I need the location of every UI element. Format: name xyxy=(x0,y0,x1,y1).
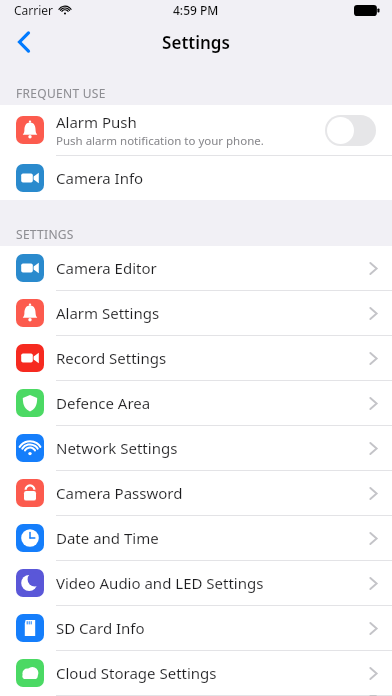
staticText: Video Audio and LED Settings xyxy=(56,573,369,593)
staticText: Defence Area xyxy=(56,393,369,413)
button[interactable]: Camera Password xyxy=(0,471,392,515)
staticText: Carrier xyxy=(14,2,54,18)
button[interactable]: Alarm Push xyxy=(0,105,392,155)
button[interactable]: SD Card Info xyxy=(0,606,392,650)
button[interactable]: Camera Info xyxy=(0,156,392,200)
button[interactable]: Cloud Storage Settings xyxy=(0,651,392,695)
staticText: SETTINGS xyxy=(16,226,74,242)
staticText: Alarm Settings xyxy=(56,303,369,323)
button[interactable]: Defence Area xyxy=(0,381,392,425)
staticText: FREQUENT USE xyxy=(16,85,106,101)
staticText: Network Settings xyxy=(56,438,369,458)
staticText: Camera Editor xyxy=(56,258,369,278)
button[interactable]: Back xyxy=(0,20,48,64)
button[interactable]: Record Settings xyxy=(0,336,392,380)
staticText: Alarm Push xyxy=(56,112,137,132)
staticText: Settings xyxy=(162,31,230,54)
staticText: Date and Time xyxy=(56,528,369,548)
staticText: Push alarm notification to your phone. xyxy=(56,133,264,149)
staticText: Camera Password xyxy=(56,483,369,503)
button[interactable]: Date and Time xyxy=(0,516,392,560)
staticText: 4:59 PM xyxy=(173,2,219,18)
button[interactable]: Camera Editor xyxy=(0,246,392,290)
button[interactable]: Network Settings xyxy=(0,426,392,470)
staticText: Cloud Storage Settings xyxy=(56,663,369,683)
staticText: Camera Info xyxy=(56,168,378,188)
staticText: Record Settings xyxy=(56,348,369,368)
button[interactable]: Alarm Push toggle xyxy=(325,115,376,146)
button[interactable]: Alarm Settings xyxy=(0,291,392,335)
button[interactable]: Video Audio and LED Settings xyxy=(0,561,392,605)
staticText: SD Card Info xyxy=(56,618,369,638)
